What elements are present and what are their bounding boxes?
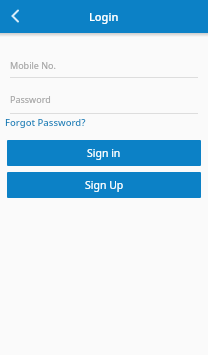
staticText: Sign Up (85, 178, 124, 192)
staticText: Sign in (87, 146, 121, 160)
button[interactable]: Sign Up (7, 172, 201, 198)
button[interactable] (0, 0, 33, 33)
staticText: Password (10, 93, 51, 105)
staticText: Login (89, 9, 119, 24)
button[interactable]: Mobile No. (10, 59, 198, 78)
button[interactable]: Sign in (7, 140, 201, 166)
button[interactable]: Forgot Password? (5, 116, 86, 129)
staticText: Mobile No. (10, 59, 56, 71)
button[interactable]: Password (10, 93, 198, 114)
